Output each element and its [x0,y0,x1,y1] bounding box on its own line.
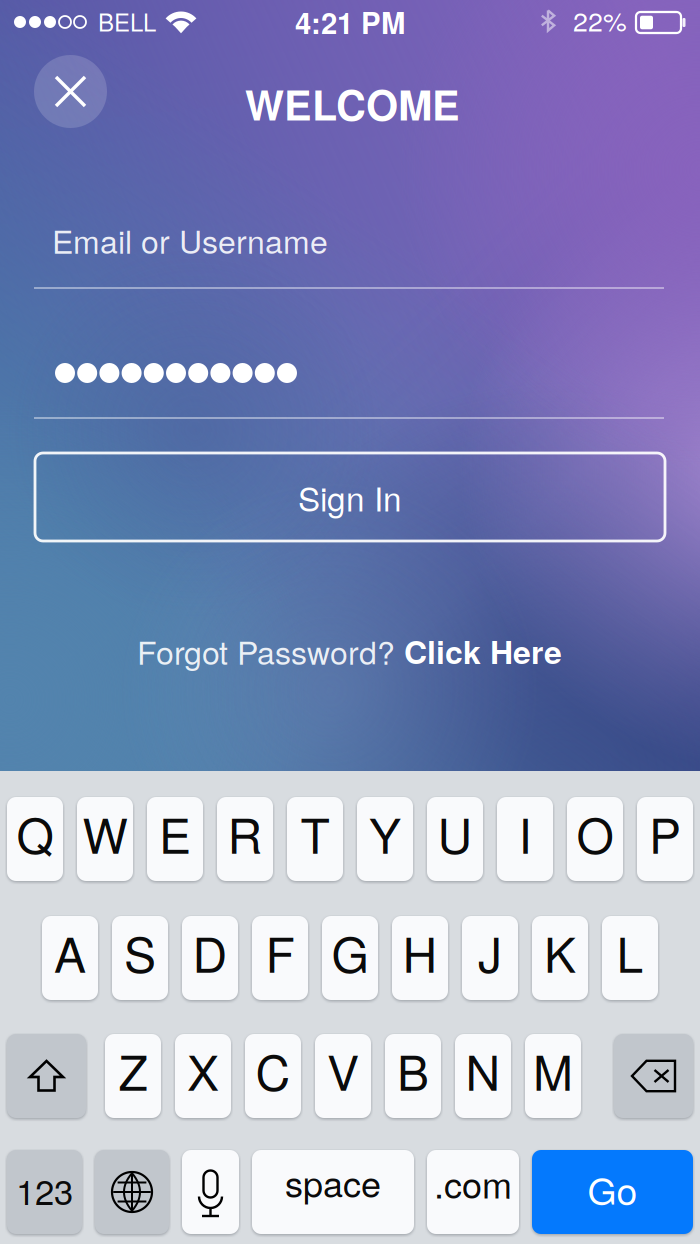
staticText: W [82,799,127,867]
staticText: U [437,799,472,867]
staticText: Go [587,1162,637,1216]
button[interactable]: Shift [7,1034,86,1118]
staticText: 123 [16,1165,73,1215]
staticText: 22% [573,1,627,39]
staticText: WELCOME [245,74,460,133]
button[interactable]: 123 [7,1150,82,1234]
button[interactable]: V [315,1034,371,1118]
staticText: T [300,799,329,867]
button[interactable]: M [525,1034,581,1118]
staticText: S [124,918,156,986]
staticText: M [533,1036,573,1104]
button[interactable]: Y [357,797,413,881]
staticText: E [159,799,191,867]
button[interactable]: S [112,916,168,1000]
button[interactable]: N [455,1034,511,1118]
button[interactable]: Forgot Password? [137,628,562,674]
staticText: J [478,918,502,986]
button[interactable]: H [392,916,448,1000]
button[interactable]: Sign In [35,453,665,541]
button[interactable]: J [462,916,518,1000]
staticText: C [255,1036,290,1104]
staticText: P [649,799,681,867]
staticText: 4:21 PM [295,1,405,43]
button[interactable]: Next keyboard [95,1150,169,1234]
staticText: BELL [98,4,156,38]
staticText: R [227,799,262,867]
staticText: Forgot Password? [137,628,404,674]
staticText: N [465,1036,500,1104]
button[interactable]: L [602,916,658,1000]
staticText: H [402,918,437,986]
staticText: A [54,918,86,986]
staticText: O [576,799,613,867]
staticText: Click Here [404,628,562,674]
staticText: I [518,799,531,867]
staticText: Sign In [298,473,402,521]
button[interactable]: Go [532,1150,693,1234]
button[interactable]: Delete [614,1034,693,1118]
button[interactable]: Z [105,1034,161,1118]
button[interactable]: space [252,1150,414,1234]
staticText: G [331,918,368,986]
button[interactable]: K [532,916,588,1000]
button[interactable]: U [427,797,483,881]
button[interactable]: O [567,797,623,881]
staticText: .com [434,1157,512,1209]
staticText: X [187,1036,219,1104]
staticText: Y [369,799,401,867]
button[interactable]: F [252,916,308,1000]
button[interactable]: A [42,916,98,1000]
button[interactable]: X [175,1034,231,1118]
staticText: Email or Username [52,217,328,263]
staticText: space [285,1156,381,1208]
button[interactable]: T [287,797,343,881]
button[interactable]: B [385,1034,441,1118]
button[interactable]: E [147,797,203,881]
button[interactable]: I [497,797,553,881]
button[interactable]: Dictate [182,1150,239,1234]
staticText: V [327,1036,359,1104]
staticText: L [616,918,643,986]
button[interactable]: Close [34,55,107,128]
button[interactable]: C [245,1034,301,1118]
staticText: B [397,1036,429,1104]
staticText: D [192,918,227,986]
staticText: Z [118,1036,147,1104]
button[interactable]: W [77,797,133,881]
staticText: F [265,918,294,986]
button[interactable]: .com [427,1150,519,1234]
button[interactable]: R [217,797,273,881]
button[interactable]: D [182,916,238,1000]
button[interactable]: Q [7,797,63,881]
staticText: K [544,918,576,986]
button[interactable]: P [637,797,693,881]
button[interactable]: G [322,916,378,1000]
staticText: Q [16,799,53,867]
